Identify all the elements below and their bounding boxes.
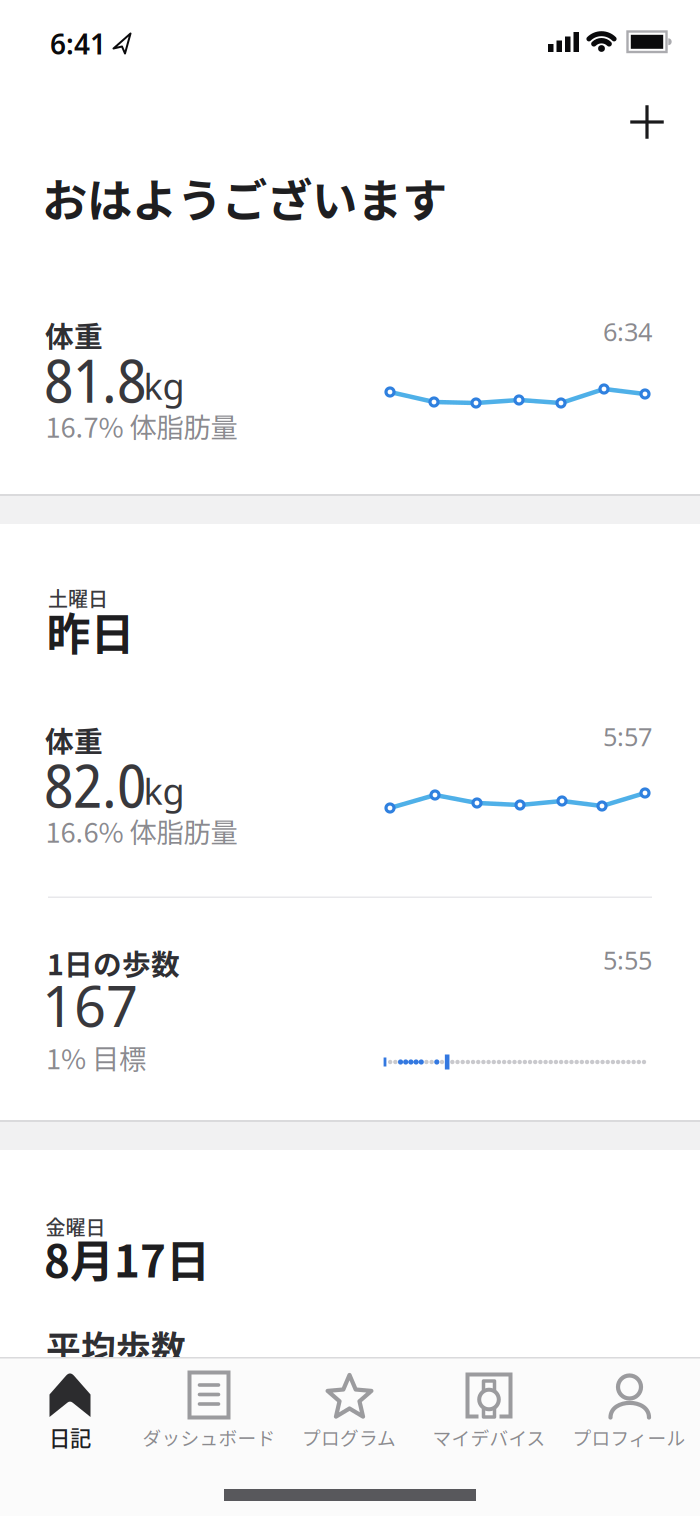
staticText: 5:57 bbox=[603, 719, 652, 753]
button[interactable]: プログラム bbox=[279, 1354, 419, 1458]
staticText: 6:41 bbox=[50, 25, 106, 62]
staticText: 日記 bbox=[49, 1422, 91, 1452]
button[interactable]: 体重 bbox=[0, 705, 700, 885]
button[interactable]: プロフィール bbox=[559, 1354, 699, 1458]
staticText: 167 bbox=[42, 968, 138, 1042]
staticText: 81.8 bbox=[44, 339, 146, 420]
button[interactable]: ダッシュボード bbox=[139, 1354, 279, 1458]
staticText: kg bbox=[143, 767, 184, 815]
staticText: 昨日 bbox=[46, 599, 134, 663]
staticText: ダッシュボード bbox=[142, 1423, 275, 1450]
staticText: 16.6% 体脂肪量 bbox=[45, 811, 237, 851]
staticText: 土曜日 bbox=[48, 583, 108, 612]
staticText: 体重 bbox=[45, 719, 103, 760]
staticText: 16.7% 体脂肪量 bbox=[45, 406, 237, 446]
button[interactable]: 体重 bbox=[0, 300, 700, 480]
button[interactable]: マイデバイス bbox=[419, 1354, 559, 1458]
staticText: マイデバイス bbox=[432, 1423, 545, 1450]
staticText: 6:34 bbox=[603, 314, 652, 348]
staticText: 5:55 bbox=[603, 943, 652, 977]
staticText: 金曜日 bbox=[45, 1212, 105, 1241]
staticText: 8月17日 bbox=[44, 1226, 210, 1290]
staticText: プロフィール bbox=[572, 1423, 685, 1450]
staticText: プログラム bbox=[302, 1423, 396, 1450]
button[interactable]: 日記 bbox=[0, 1354, 140, 1458]
staticText: 平均歩数 bbox=[46, 1321, 186, 1372]
staticText: 82.0 bbox=[44, 744, 146, 825]
button[interactable] bbox=[625, 100, 669, 144]
staticText: 体重 bbox=[45, 314, 103, 355]
staticText: 1% 目標 bbox=[46, 1037, 146, 1077]
staticText: 1日の歩数 bbox=[47, 942, 180, 983]
staticText: kg bbox=[143, 362, 184, 410]
button[interactable]: 1日の歩数 bbox=[0, 898, 700, 1100]
staticText: おはようございます bbox=[42, 165, 447, 231]
